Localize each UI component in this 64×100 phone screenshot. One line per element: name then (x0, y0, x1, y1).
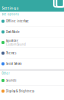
staticText: Sounds (6, 79, 16, 82)
button[interactable]: Themes (0, 48, 64, 58)
button[interactable]: Equalizer (0, 37, 64, 48)
staticText: Equalizer (6, 39, 18, 42)
button[interactable]: Dark Mode (0, 27, 64, 37)
staticText: Settings (1, 5, 18, 10)
button[interactable]: Display & Brightness (0, 86, 64, 96)
staticText: Offline interface (6, 19, 29, 23)
staticText: Themes (6, 51, 16, 55)
staticText: Other (1, 72, 9, 75)
staticText: Custom Sound (6, 43, 26, 46)
button[interactable]: Social Sahara (0, 59, 64, 69)
staticText: Social Sahara (6, 62, 21, 66)
button[interactable]: Sounds (0, 75, 64, 85)
button[interactable]: Offline interface (0, 16, 64, 26)
staticText: Dark Mode (6, 30, 20, 34)
staticText: Site options (1, 13, 18, 16)
staticText: Display & Brightness (6, 89, 34, 93)
